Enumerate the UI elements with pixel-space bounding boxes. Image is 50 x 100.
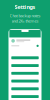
staticText: and 2X+ themes xyxy=(11,18,38,24)
staticText: Chat backup notes xyxy=(9,13,40,18)
staticText: Settings xyxy=(14,3,35,11)
